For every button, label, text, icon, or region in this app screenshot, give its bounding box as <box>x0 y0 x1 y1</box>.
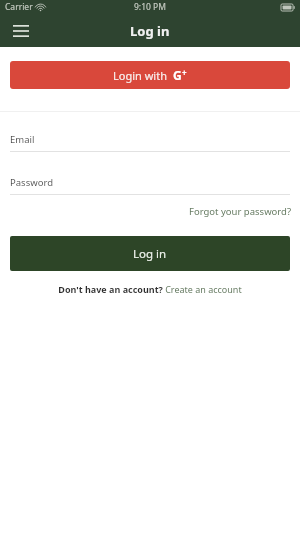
staticText: Login with <box>113 68 167 83</box>
staticText: Log in <box>130 22 170 40</box>
staticText: 9:10 PM <box>134 1 166 13</box>
staticText: Log in <box>133 246 167 262</box>
button[interactable]: Log in <box>10 236 290 271</box>
staticText: Password <box>10 176 53 189</box>
button[interactable]: Login with <box>10 61 290 89</box>
button[interactable]: Don't have an account? Create an account <box>58 283 242 295</box>
staticText: G <box>173 67 182 83</box>
button[interactable]: Forgot your password? <box>181 203 300 220</box>
staticText: Carrier <box>5 1 33 13</box>
button[interactable]: Menu <box>8 18 34 44</box>
staticText: Don't have an account? Create an account <box>58 283 242 295</box>
staticText: + <box>182 67 187 78</box>
staticText: Email <box>10 133 35 146</box>
staticText: Forgot your password? <box>189 205 292 218</box>
